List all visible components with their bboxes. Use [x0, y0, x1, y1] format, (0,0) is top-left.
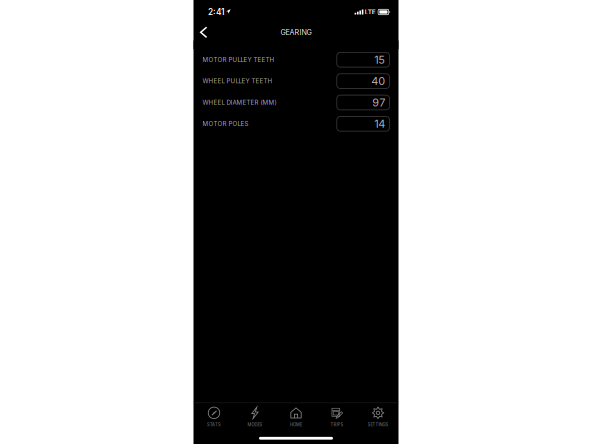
button[interactable]: STATS [193, 403, 234, 427]
staticText: WHEEL DIAMETER (MM) [202, 99, 276, 106]
staticText: LTE [365, 8, 376, 16]
button[interactable]: WHEEL PULLEY TEETH [193, 70, 398, 92]
button[interactable]: SETTINGS [357, 403, 398, 427]
staticText: 40 [371, 74, 385, 88]
staticText: MOTOR PULLEY TEETH [202, 56, 274, 63]
button[interactable]: HOME [275, 403, 316, 427]
button[interactable]: TRIPS [316, 403, 357, 427]
staticText: WHEEL PULLEY TEETH [202, 77, 272, 85]
staticText: HOME [290, 422, 302, 427]
staticText: 2:41 [208, 7, 224, 17]
button[interactable]: WHEEL DIAMETER (MM) [193, 92, 398, 113]
button[interactable]: MODES [234, 403, 275, 427]
staticText: GEARING [280, 28, 311, 37]
button[interactable]: Back [193, 21, 215, 43]
staticText: 15 [374, 53, 385, 66]
staticText: STATS [207, 422, 221, 427]
staticText: 14 [374, 117, 385, 130]
button[interactable]: MOTOR POLES [193, 113, 398, 135]
staticText: 97 [372, 96, 385, 109]
staticText: SETTINGS [367, 422, 388, 427]
staticText: TRIPS [330, 422, 343, 427]
button[interactable]: MOTOR PULLEY TEETH [193, 49, 398, 70]
staticText: MODES [247, 422, 262, 427]
staticText: MOTOR POLES [202, 120, 248, 127]
